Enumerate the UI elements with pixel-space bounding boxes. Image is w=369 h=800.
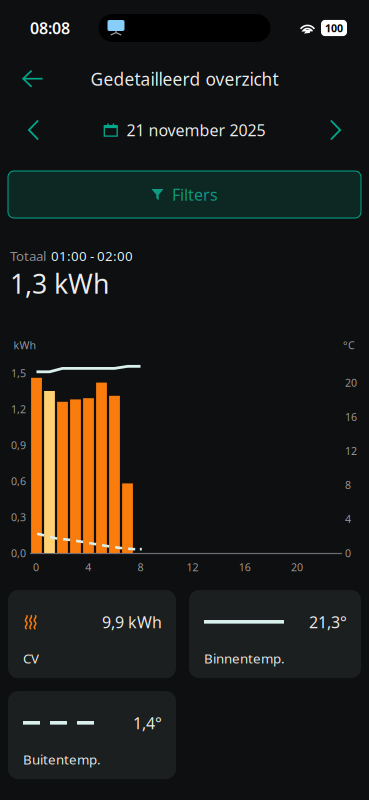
staticText: 01:00 - 02:00: [51, 247, 133, 265]
staticText: 16: [239, 560, 251, 574]
staticText: 21,3°: [309, 611, 347, 633]
staticText: 0,0: [11, 546, 26, 560]
staticText: 100: [325, 21, 343, 35]
staticText: 0,3: [11, 510, 26, 524]
button[interactable]: 21,3°: [189, 590, 361, 678]
staticText: 0,9: [11, 438, 26, 452]
staticText: Buitentemp.: [23, 750, 101, 768]
staticText: 12: [345, 444, 357, 458]
staticText: 1,3 kWh: [10, 266, 109, 301]
staticText: 4: [345, 512, 351, 526]
staticText: 1,2: [11, 402, 26, 416]
button[interactable]: Filters: [0, 158, 369, 218]
staticText: 4: [85, 560, 91, 574]
staticText: 12: [187, 560, 199, 574]
staticText: 08:08: [30, 17, 70, 39]
staticText: 0: [33, 560, 39, 574]
button[interactable]: 9,9 kWh: [8, 590, 176, 678]
staticText: 8: [345, 478, 351, 492]
staticText: 21 november 2025: [126, 119, 265, 141]
staticText: kWh: [13, 338, 36, 352]
staticText: 1,5: [11, 366, 26, 380]
staticText: 0,6: [11, 474, 26, 488]
staticText: Totaal: [10, 247, 46, 265]
button[interactable]: Terug: [0, 59, 57, 98]
staticText: °C: [343, 338, 355, 352]
staticText: 20: [345, 376, 357, 390]
button[interactable]: 1,4°: [8, 691, 176, 779]
staticText: 20: [291, 560, 303, 574]
staticText: Gedetailleerd overzicht: [90, 67, 278, 90]
staticText: 0: [345, 546, 351, 560]
button[interactable]: Vorige dag: [14, 109, 53, 150]
staticText: 8: [137, 560, 143, 574]
staticText: 9,9 kWh: [102, 611, 162, 633]
staticText: Binnentemp.: [204, 649, 285, 667]
button[interactable]: Volgende dag: [316, 109, 355, 150]
staticText: Filters: [172, 184, 218, 205]
staticText: 1,4°: [133, 712, 162, 734]
staticText: 16: [345, 410, 357, 424]
staticText: CV: [23, 649, 39, 667]
